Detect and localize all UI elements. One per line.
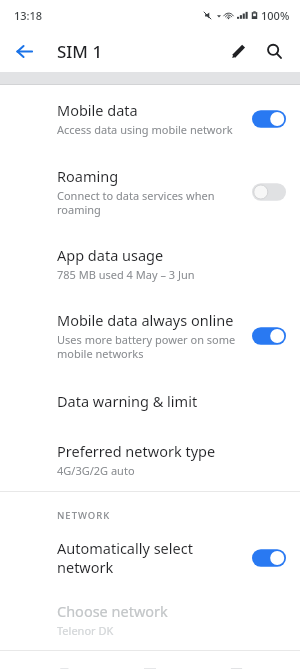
button[interactable]: Choose network	[0, 589, 300, 650]
button[interactable]: Roaming	[0, 152, 300, 231]
staticText: Choose network	[57, 601, 168, 621]
staticText: Connect to data services when roaming	[57, 188, 215, 217]
staticText: App data usage	[57, 245, 164, 265]
staticText: Automatically select network	[57, 538, 244, 577]
button[interactable]: Preferred network type	[0, 427, 300, 491]
staticText: 13:18	[14, 8, 43, 23]
staticText: Uses more battery power on some mobile n…	[57, 332, 236, 361]
staticText: Access data using mobile network	[57, 122, 233, 137]
staticText: SIM 1	[57, 40, 103, 63]
button[interactable]: Off	[252, 182, 286, 202]
staticText: 785 MB used 4 May – 3 Jun	[57, 267, 195, 282]
staticText: 4G/3G/2G auto	[57, 463, 135, 478]
button[interactable]: Search	[256, 33, 292, 69]
button[interactable]: On	[252, 326, 286, 346]
button[interactable]: Data warning & limit	[0, 375, 300, 427]
staticText: Telenor DK	[57, 623, 114, 638]
staticText: 100%	[261, 8, 290, 23]
staticText: Roaming	[57, 166, 119, 186]
button[interactable]: App data usage	[0, 231, 300, 296]
staticText: Preferred network type	[57, 441, 216, 461]
staticText: Mobile data always online	[57, 310, 234, 330]
button[interactable]: Mobile data always online	[0, 296, 300, 375]
staticText: NETWORK	[57, 509, 111, 522]
staticText: Mobile data	[57, 100, 138, 120]
staticText: Data warning & limit	[57, 391, 198, 411]
button[interactable]: Edit	[220, 33, 256, 69]
button[interactable]: Back	[6, 33, 42, 69]
button[interactable]: Mobile data	[0, 85, 300, 152]
button[interactable]: Automatically select network	[0, 526, 300, 589]
button[interactable]: On	[252, 109, 286, 129]
button[interactable]: On	[252, 548, 286, 568]
